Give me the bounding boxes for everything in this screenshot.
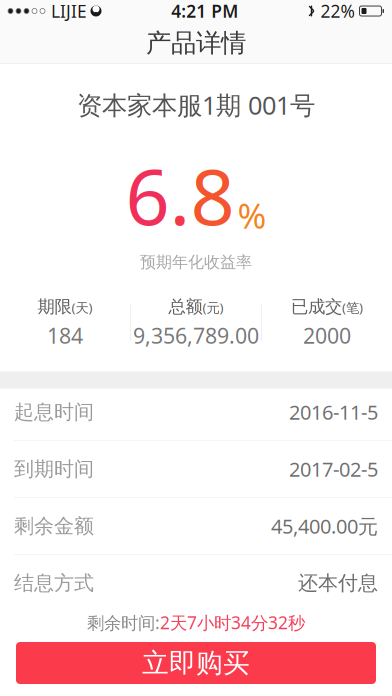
button[interactable]: 立即购买 <box>16 642 376 684</box>
staticText: 45,400.00元 <box>271 513 378 539</box>
staticText: 4:21 PM <box>171 0 238 22</box>
button[interactable]: 产品说明书 <box>0 620 392 666</box>
staticText: 2000 <box>303 321 351 350</box>
staticText: (笔) <box>342 299 363 316</box>
staticText: 184 <box>47 321 83 350</box>
staticText: (元) <box>202 299 223 316</box>
staticText: 8 <box>190 144 234 246</box>
staticText: 立即购买 <box>142 647 250 679</box>
staticText: 剩余时间: <box>87 611 160 634</box>
staticText: 已成交 <box>291 296 342 317</box>
staticText: 总额 <box>168 296 202 317</box>
staticText: 到期时间 <box>14 457 94 481</box>
staticText: 9,356,789.00 <box>133 321 259 350</box>
staticText: 资本家本服1期 001号 <box>77 88 315 122</box>
staticText: 结息方式 <box>14 571 94 595</box>
staticText: (天) <box>72 299 93 316</box>
staticText: 2016-11-5 <box>289 399 378 425</box>
staticText: 2天7小时34分32秒 <box>160 611 305 634</box>
staticText: 6 <box>125 144 169 246</box>
staticText: 起息时间 <box>14 400 94 424</box>
staticText: 剩余金额 <box>14 514 94 538</box>
staticText: LIJIE <box>51 0 87 22</box>
staticText: % <box>237 192 266 238</box>
staticText: . <box>169 144 190 246</box>
staticText: 期限 <box>38 296 72 317</box>
staticText: 还本付息 <box>298 571 378 595</box>
staticText: 产品详情 <box>146 27 246 58</box>
staticText: 2017-02-5 <box>289 456 378 482</box>
staticText: 产品说明书 <box>14 630 114 655</box>
staticText: 22% <box>320 0 354 22</box>
staticText: 预期年化收益率 <box>140 252 252 272</box>
